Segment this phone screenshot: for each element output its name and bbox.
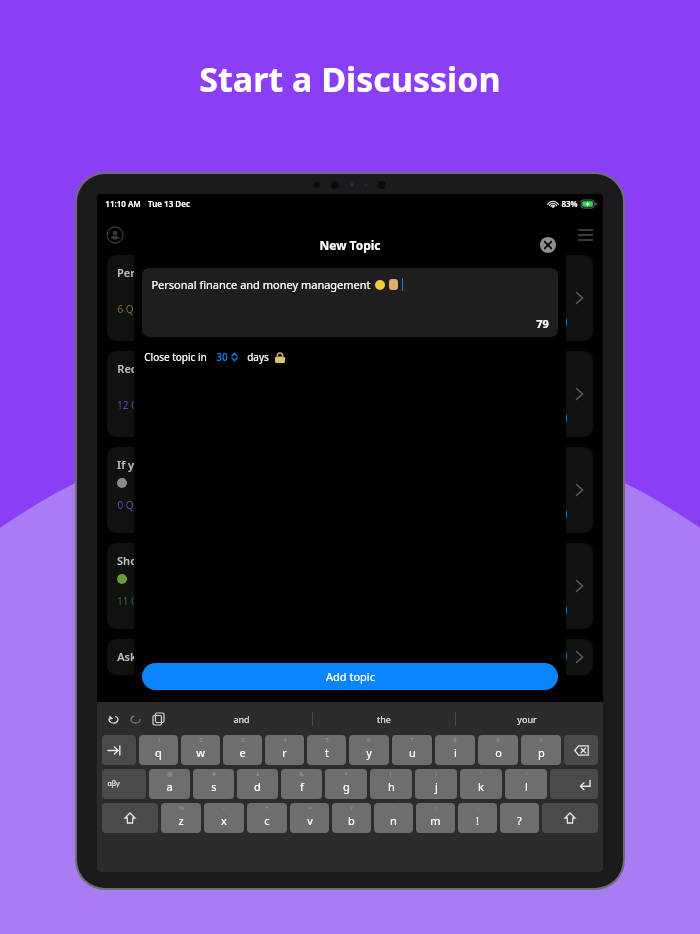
staticText: Personal finance and money management	[151, 277, 371, 292]
button[interactable]: Personal fi	[107, 255, 593, 341]
button[interactable]: %	[161, 803, 201, 833]
button[interactable]: :	[374, 803, 413, 833]
staticText: o	[495, 745, 502, 760]
staticText: p	[538, 745, 545, 760]
button[interactable]: and	[170, 706, 312, 732]
staticText: j	[435, 779, 438, 794]
staticText: Recommen	[117, 361, 178, 376]
button[interactable]: Personal finance and money management	[142, 268, 558, 337]
button[interactable]: Language	[102, 769, 146, 799]
staticText: ;	[435, 804, 437, 812]
button[interactable]: If you	[107, 447, 593, 533]
button[interactable]: Redo	[124, 706, 146, 732]
staticText: 6	[367, 736, 371, 744]
button[interactable]: 6	[349, 735, 389, 765]
staticText: :	[393, 804, 395, 812]
staticText: &	[299, 770, 304, 778]
staticText: !	[476, 813, 479, 828]
button[interactable]: Should	[107, 543, 593, 629]
staticText: New Topic	[319, 237, 381, 253]
staticText: Ask m	[117, 649, 150, 664]
button[interactable]: @	[149, 769, 190, 799]
staticText: w	[196, 745, 205, 760]
staticText: Should	[117, 553, 154, 568]
button[interactable]: 2	[181, 735, 220, 765]
button[interactable]: Undo	[102, 706, 124, 732]
button[interactable]: Menu	[578, 229, 593, 241]
button[interactable]: Close	[540, 237, 556, 253]
button[interactable]: Ask m	[107, 639, 593, 675]
staticText: @	[167, 770, 173, 778]
staticText: If you	[117, 457, 148, 472]
button[interactable]: 9	[478, 735, 518, 765]
button[interactable]: Recommen	[107, 351, 593, 437]
staticText: 30	[216, 350, 228, 364]
button[interactable]: 4	[265, 735, 304, 765]
button[interactable]: 8	[435, 735, 475, 765]
button[interactable]: Add topic	[142, 663, 558, 690]
staticText: u	[409, 745, 416, 760]
button[interactable]: your	[456, 706, 598, 732]
button[interactable]: "	[505, 769, 547, 799]
staticText: 83%	[561, 198, 578, 209]
button[interactable]: .	[500, 803, 539, 833]
button[interactable]: Tab	[102, 735, 136, 765]
button[interactable]: &	[281, 769, 322, 799]
staticText: the	[377, 713, 391, 725]
staticText: 5	[325, 736, 329, 744]
staticText: f	[300, 779, 304, 794]
button[interactable]: 0	[521, 735, 561, 765]
staticText: +	[265, 804, 269, 812]
staticText: Close topic in	[144, 350, 207, 364]
button[interactable]: 7	[392, 735, 432, 765]
button[interactable]: +	[247, 803, 287, 833]
button[interactable]: 1	[139, 735, 178, 765]
staticText: '	[480, 770, 482, 778]
button[interactable]: Shift	[542, 803, 598, 833]
button[interactable]: 30	[216, 350, 238, 364]
button[interactable]: #	[193, 769, 234, 799]
staticText: h	[388, 779, 395, 794]
button[interactable]: (	[370, 769, 412, 799]
button[interactable]: *	[325, 769, 367, 799]
staticText: 1	[157, 736, 161, 744]
button[interactable]: Profile	[107, 227, 123, 243]
staticText: 9	[496, 736, 500, 744]
staticText: l	[525, 779, 528, 794]
staticText: 11:10 AM	[105, 198, 141, 209]
button[interactable]: Shift	[102, 803, 158, 833]
button[interactable]: '	[460, 769, 502, 799]
button[interactable]: /	[332, 803, 371, 833]
staticText: £	[256, 770, 260, 778]
staticText: z	[178, 813, 184, 828]
button[interactable]: ;	[416, 803, 455, 833]
staticText: .	[519, 804, 521, 812]
button[interactable]: 3	[223, 735, 262, 765]
staticText: k	[478, 779, 484, 794]
button[interactable]: 5	[307, 735, 346, 765]
staticText: /	[350, 804, 353, 812]
staticText: 0 Q	[117, 498, 134, 512]
button[interactable]: Paste	[146, 706, 170, 732]
staticText: and	[233, 713, 250, 725]
button[interactable]: =	[290, 803, 329, 833]
button[interactable]: £	[237, 769, 278, 799]
staticText: n	[390, 813, 397, 828]
button[interactable]: )	[415, 769, 457, 799]
staticText: Personal fi	[117, 265, 174, 280]
staticText: )	[435, 770, 437, 778]
staticText: 12 Q	[117, 398, 139, 412]
staticText: e	[239, 745, 246, 760]
staticText: 4	[283, 736, 287, 744]
button[interactable]: ,	[458, 803, 497, 833]
button[interactable]: Delete	[564, 735, 598, 765]
button[interactable]: the	[313, 706, 455, 732]
staticText: ,	[477, 804, 479, 812]
button[interactable]: -	[204, 803, 244, 833]
button[interactable]: Return	[550, 769, 598, 799]
staticText: b	[348, 813, 355, 828]
staticText: "	[525, 770, 528, 778]
